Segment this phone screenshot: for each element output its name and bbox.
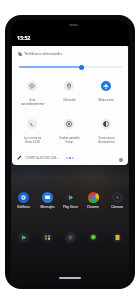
staticText: Chrome [87,205,99,209]
staticText: Play Store [63,205,78,209]
button[interactable]: App [106,232,128,243]
button[interactable]: Editar [17,155,22,160]
staticText: Modo avión [98,98,114,102]
button[interactable]: Teléfono [12,192,34,209]
staticText: 10 (MP1A.201005.004... [25,156,59,160]
button[interactable]: Cámara [106,192,128,209]
button[interactable]: Modo avión [88,81,124,102]
staticText: Teléfono silenciado [24,51,62,57]
button[interactable]: Ajustes [119,158,123,162]
button[interactable]: Tema oscuro Al anochecer [88,119,124,144]
button[interactable]: Play Store [59,192,81,209]
button[interactable]: App [36,232,58,243]
staticText: Ubicación [63,98,76,102]
button[interactable]: Chrome [82,192,104,209]
button[interactable]: Ubicación [51,81,87,102]
button[interactable]: App [82,232,104,243]
staticText: Luz nocturna Hora: 23:00 [24,136,41,144]
staticText: Teléfono [17,205,30,209]
button[interactable]: Luz nocturna Hora: 23:00 [14,119,50,144]
button[interactable]: App [12,232,34,243]
button[interactable]: Mensajes [36,192,58,209]
button[interactable]: App [59,232,81,243]
staticText: Girar automáticamente [21,98,44,106]
staticText: 13:52 [17,34,31,41]
staticText: Grabar pantalla Iniciar [59,136,80,144]
staticText: Mensajes [40,205,55,209]
staticText: Tema oscuro Al anochecer [98,136,115,144]
button[interactable]: Grabar pantalla Iniciar [51,119,87,144]
staticText: Cámara [111,205,123,209]
button[interactable]: Girar automáticamente [14,81,50,106]
